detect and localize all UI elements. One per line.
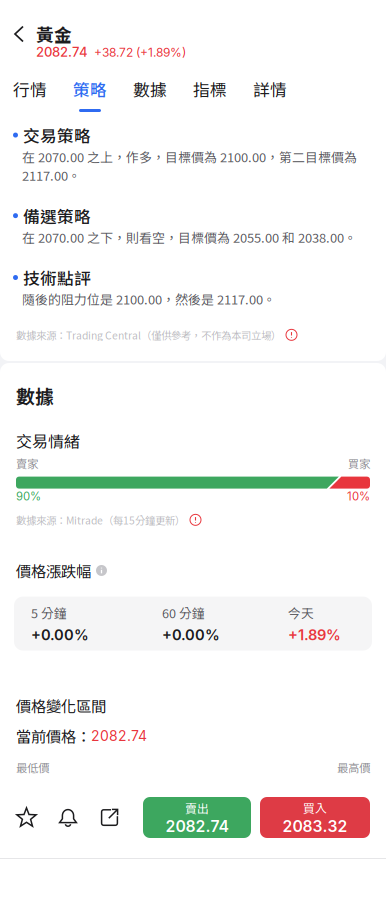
staticText: 90% xyxy=(16,490,41,503)
staticText: 賣家 xyxy=(16,455,38,472)
staticText: 備選策略 xyxy=(23,204,91,228)
staticText: 交易策略 xyxy=(23,123,91,147)
staticText: 買家 xyxy=(348,455,370,472)
staticText: 隨後的阻力位是 2100.00，然後是 2117.00。 xyxy=(22,290,276,308)
button[interactable]: 行情 xyxy=(0,68,60,117)
staticText: 數據 xyxy=(16,382,54,409)
staticText: 數據來源：Trading Central（僅供參考，不作為本司立場） xyxy=(16,327,281,342)
staticText: 策略 xyxy=(73,77,107,101)
staticText: 2083.32 xyxy=(282,817,347,836)
button[interactable]: 指標 xyxy=(180,68,240,117)
staticText: 數據 xyxy=(133,77,167,101)
staticText: 最低價 xyxy=(16,759,49,775)
button[interactable]: 買入 xyxy=(260,797,370,838)
button[interactable]: 賣出 xyxy=(143,797,251,838)
staticText: 行情 xyxy=(13,77,47,101)
staticText: +0.00% xyxy=(162,626,220,644)
staticText: +1.89% xyxy=(288,626,341,644)
staticText: 數據來源：Mitrade（每15分鐘更新） xyxy=(16,512,185,527)
staticText: 當前價格： xyxy=(16,725,91,747)
staticText: 價格變化區間 xyxy=(16,695,106,717)
staticText: 指標 xyxy=(193,77,227,101)
staticText: 10% xyxy=(347,490,370,503)
staticText: 黃金 xyxy=(36,21,72,46)
staticText: +0.00% xyxy=(31,626,89,644)
staticText: 最高價 xyxy=(337,759,370,775)
button[interactable]: Alerts xyxy=(47,797,89,838)
staticText: 詳情 xyxy=(253,77,287,101)
button[interactable]: Favourite xyxy=(6,797,47,838)
staticText: 2082.74 xyxy=(165,817,228,836)
staticText: 在 2070.00 之上，作多，目標價為 2100.00，第二目標價為 2117… xyxy=(22,147,357,185)
staticText: 技術點評 xyxy=(23,265,91,290)
staticText: 賣出 xyxy=(185,799,209,817)
staticText: 5 分鐘 xyxy=(31,604,67,622)
button[interactable]: 策略 xyxy=(60,68,120,117)
button[interactable]: Back xyxy=(0,18,38,50)
button[interactable]: Share xyxy=(89,797,131,838)
staticText: 2082.74 xyxy=(36,44,88,60)
staticText: 今天 xyxy=(288,604,314,622)
staticText: 60 分鐘 xyxy=(162,604,205,622)
button[interactable]: 數據 xyxy=(120,68,180,117)
staticText: 2082.74 xyxy=(91,727,147,744)
staticText: +38.72 (+1.89%) xyxy=(94,45,186,59)
staticText: 價格漲跌幅 xyxy=(16,559,91,582)
staticText: 交易情緒 xyxy=(16,429,80,452)
button[interactable]: 詳情 xyxy=(240,68,300,117)
staticText: 在 2070.00 之下，則看空，目標價為 2055.00 和 2038.00。 xyxy=(22,228,357,246)
staticText: 買入 xyxy=(303,799,327,817)
